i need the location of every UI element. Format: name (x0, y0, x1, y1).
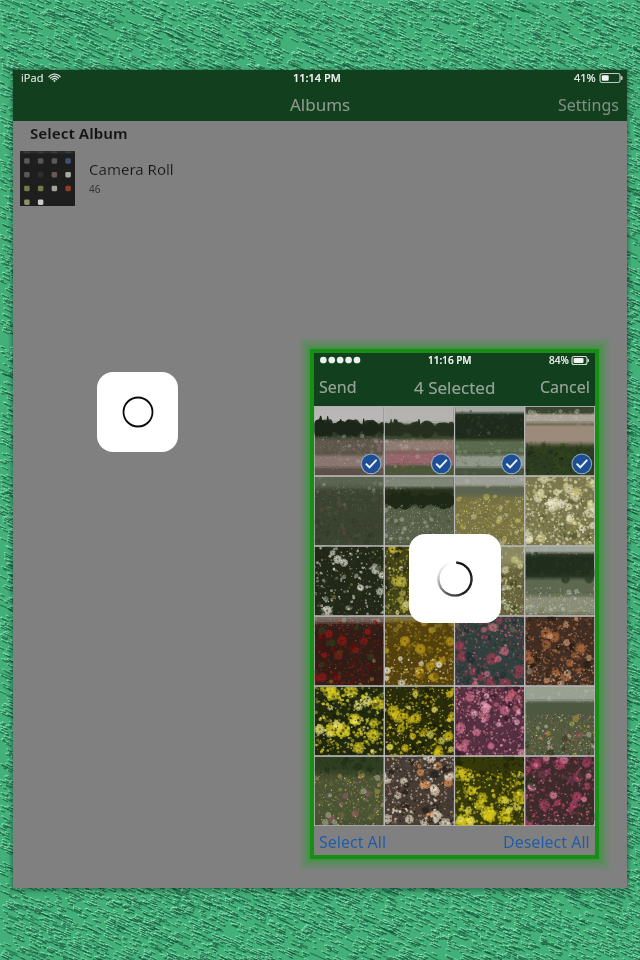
button[interactable]: Select All (314, 826, 395, 855)
staticText: 84% (549, 353, 569, 367)
staticText: Settings (558, 94, 619, 115)
button[interactable]: Loading (97, 372, 178, 452)
staticText: 46 (89, 182, 101, 196)
staticText: 4 Selected (414, 376, 496, 399)
staticText: 11:16 PM (428, 353, 472, 367)
button[interactable]: Settings (546, 90, 627, 119)
button[interactable]: Camera Roll (13, 145, 627, 215)
button[interactable]: Send (314, 370, 366, 404)
staticText: iPad (21, 70, 44, 85)
staticText: Camera Roll (89, 159, 174, 179)
staticText: Select All (319, 831, 387, 850)
staticText: Cancel (540, 376, 590, 398)
staticText: Albums (290, 93, 351, 116)
staticText: Select Album (30, 123, 128, 143)
staticText: Send (319, 376, 357, 398)
staticText: 11:14 PM (293, 70, 341, 85)
button[interactable]: Cancel (531, 370, 595, 404)
staticText: 41% (574, 70, 596, 85)
button[interactable]: Loading (409, 534, 501, 623)
button[interactable]: Deselect All (495, 826, 595, 855)
staticText: Deselect All (503, 831, 590, 850)
